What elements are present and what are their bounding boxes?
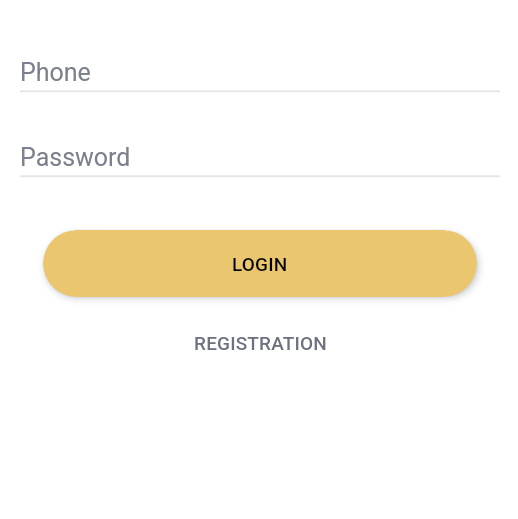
staticText: REGISTRATION — [194, 332, 327, 354]
staticText: Phone — [20, 58, 91, 87]
button[interactable]: LOGIN — [43, 230, 477, 297]
button[interactable]: REGISTRATION — [20, 319, 500, 359]
staticText: Password — [20, 143, 131, 172]
staticText: LOGIN — [232, 253, 288, 275]
button[interactable]: Phone — [20, 48, 500, 90]
button[interactable]: Password — [20, 133, 500, 175]
